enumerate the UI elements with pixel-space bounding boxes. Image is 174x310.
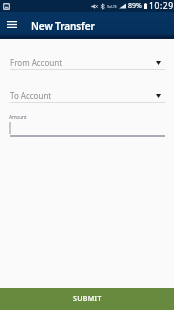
staticText: 89% [128, 1, 142, 11]
staticText: New Transfer [31, 19, 95, 33]
staticText: From Account [10, 57, 63, 68]
staticText: VoLTE [107, 4, 117, 9]
staticText: To Account [10, 90, 52, 101]
staticText: Amount [9, 114, 27, 121]
staticText: 10:29 [149, 0, 174, 12]
staticText: SUBMIT [73, 294, 102, 304]
button[interactable]: SUBMIT [0, 288, 174, 310]
button[interactable]: Open navigation menu [0, 13, 23, 36]
button[interactable]: To Account, select [0, 85, 174, 103]
button[interactable]: Amount [0, 113, 174, 137]
button[interactable]: From Account, select [0, 52, 174, 70]
